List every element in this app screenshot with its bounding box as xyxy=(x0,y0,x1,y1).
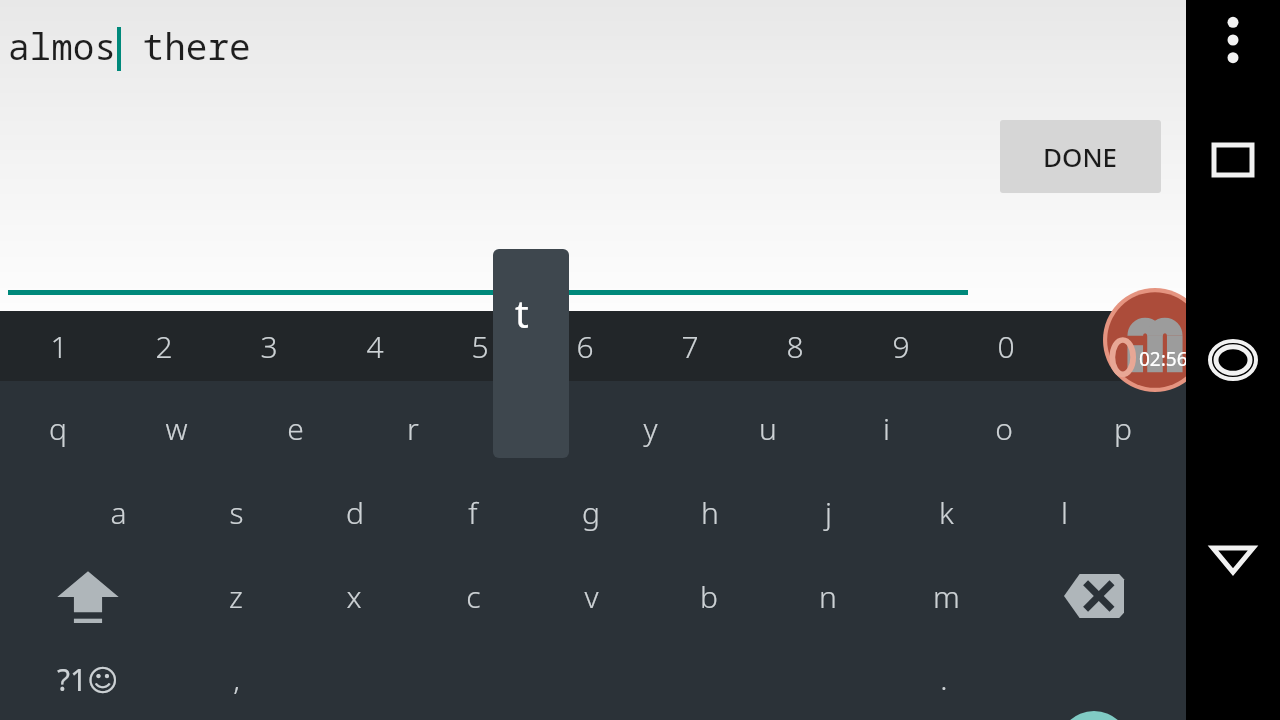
staticText: 5 xyxy=(471,326,489,367)
button[interactable]: 6 xyxy=(532,311,637,381)
button[interactable]: v xyxy=(532,554,650,638)
staticText: j xyxy=(825,492,832,533)
button[interactable]: g xyxy=(532,470,650,554)
staticText: 2 xyxy=(155,326,173,367)
staticText: 3 xyxy=(260,326,278,367)
staticText: there xyxy=(121,22,251,71)
button[interactable]: f xyxy=(414,470,532,554)
button[interactable]: u xyxy=(709,386,827,470)
staticText: . xyxy=(940,658,948,699)
button[interactable]: o xyxy=(945,386,1063,470)
button[interactable]: a xyxy=(59,470,177,554)
staticText: h xyxy=(701,492,719,533)
button[interactable]: Back xyxy=(1197,520,1269,600)
button[interactable]: c xyxy=(414,554,532,638)
button[interactable]: 4 xyxy=(322,311,427,381)
staticText: s xyxy=(229,492,244,533)
button[interactable]: h xyxy=(651,470,769,554)
button[interactable]: 2 xyxy=(111,311,216,381)
button[interactable]: 3 xyxy=(216,311,321,381)
staticText: b xyxy=(700,576,718,617)
staticText: 02:56 xyxy=(1139,346,1188,372)
button[interactable]: , xyxy=(177,637,295,719)
staticText: m xyxy=(933,576,960,617)
button[interactable]: s xyxy=(177,470,295,554)
button[interactable]: w xyxy=(117,386,235,470)
staticText: n xyxy=(819,576,837,617)
staticText: almos xyxy=(8,22,117,71)
button[interactable]: 5 xyxy=(427,311,532,381)
button[interactable]: n xyxy=(769,554,887,638)
staticText: l xyxy=(1061,492,1068,533)
staticText: o xyxy=(995,408,1013,449)
staticText: y xyxy=(643,408,658,449)
button[interactable]: q xyxy=(0,386,117,470)
button[interactable]: 7 xyxy=(637,311,742,381)
staticText: q xyxy=(49,408,67,449)
button[interactable]: k xyxy=(887,470,1005,554)
staticText: 0 xyxy=(997,326,1015,367)
staticText: r xyxy=(407,408,419,449)
staticText: p xyxy=(1114,408,1132,449)
button[interactable]: More options xyxy=(1197,0,1269,80)
button[interactable]: i xyxy=(827,386,945,470)
staticText: e xyxy=(287,408,304,449)
staticText: 6 xyxy=(576,326,594,367)
button[interactable]: 8 xyxy=(742,311,847,381)
staticText: v xyxy=(584,576,599,617)
staticText: a xyxy=(110,492,127,533)
staticText: 4 xyxy=(366,326,384,367)
button[interactable]: b xyxy=(650,554,768,638)
staticText: DONE xyxy=(1043,139,1118,174)
button[interactable]: Enter xyxy=(1058,711,1130,720)
staticText: 7 xyxy=(681,326,699,367)
button[interactable]: 0 xyxy=(953,311,1058,381)
staticText: u xyxy=(759,408,777,449)
staticText: 1 xyxy=(50,326,68,367)
button[interactable]: Recent apps xyxy=(1197,120,1269,200)
button[interactable]: t xyxy=(472,386,590,470)
button[interactable]: r xyxy=(354,386,472,470)
button[interactable]: y xyxy=(591,386,709,470)
button[interactable]: 9 xyxy=(848,311,953,381)
staticText: w xyxy=(165,408,188,449)
button[interactable]: z xyxy=(177,554,295,638)
staticText: z xyxy=(229,576,243,617)
staticText: 9 xyxy=(892,326,910,367)
button[interactable]: 1 xyxy=(6,311,111,381)
button[interactable]: d xyxy=(296,470,414,554)
staticText: g xyxy=(582,492,600,533)
button[interactable]: x xyxy=(295,554,413,638)
staticText: ?1☺ xyxy=(57,659,119,700)
button[interactable]: ?1☺ xyxy=(30,638,146,720)
button[interactable]: Shift xyxy=(30,554,146,638)
button[interactable]: . xyxy=(885,637,1003,719)
button[interactable]: DONE xyxy=(1000,120,1161,193)
staticText: d xyxy=(346,492,364,533)
button[interactable]: e xyxy=(236,386,354,470)
staticText: i xyxy=(883,408,890,449)
staticText: 8 xyxy=(786,326,804,367)
staticText: x xyxy=(346,576,362,617)
button[interactable]: m xyxy=(887,554,1005,638)
staticText: f xyxy=(468,492,478,533)
button[interactable]: Backspace xyxy=(1036,554,1152,638)
staticText: , xyxy=(233,658,240,699)
staticText: k xyxy=(939,492,954,533)
button[interactable]: j xyxy=(769,470,887,554)
button[interactable]: p xyxy=(1064,386,1182,470)
staticText: t xyxy=(515,287,529,339)
button[interactable]: Home xyxy=(1197,320,1269,400)
staticText: c xyxy=(466,576,481,617)
button[interactable]: l xyxy=(1005,470,1123,554)
